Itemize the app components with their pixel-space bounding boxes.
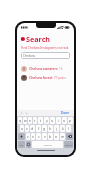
staticText: n [55,134,58,139]
button[interactable]: i [56,117,61,124]
button[interactable]: v [42,133,47,140]
button[interactable]: search [32,141,63,148]
button[interactable]: d [30,125,35,132]
button[interactable]: x [31,133,35,140]
button[interactable]: Done [60,111,71,115]
staticText: l [68,126,69,131]
button[interactable]: 123 [18,141,25,148]
button[interactable]: p [68,117,73,124]
button[interactable]: h [48,125,53,132]
staticText: f [38,126,40,131]
staticText: Done [61,111,70,115]
button[interactable]: search [64,141,73,148]
staticText: x [32,134,34,139]
button[interactable]: j [54,125,59,132]
staticText: u [51,118,54,123]
staticText: v [44,134,46,139]
staticText: r [34,118,36,123]
staticText: Find Chelsea Instagrams to track [21,46,69,50]
staticText: search [44,143,52,146]
staticText: Search [26,34,51,44]
button[interactable]: r [33,117,37,124]
staticText: a [21,126,23,131]
staticText: b [49,134,52,139]
staticText: d [31,126,34,131]
button[interactable]: q [18,117,22,124]
button[interactable]: z [26,133,30,140]
button[interactable]: Emoji [26,141,31,148]
staticText: Chelsea [23,54,35,58]
button[interactable]: b [48,133,53,140]
button[interactable]: n [54,133,59,140]
button[interactable]: s [25,125,29,132]
button[interactable]: Previous field [20,112,23,115]
staticText: o [63,118,66,123]
button[interactable]: k [60,125,65,132]
staticText: p [69,118,72,123]
button[interactable]: l [66,125,71,132]
button[interactable]: a [20,125,24,132]
staticText: Chelsea sweaters [29,66,58,71]
button[interactable]: Backspace [66,133,73,140]
button[interactable]: Next field [25,112,28,115]
button[interactable]: c [36,133,41,140]
staticText: k [62,126,64,131]
staticText: z [27,134,29,139]
staticText: t [40,118,42,123]
button[interactable]: t [38,117,43,124]
button[interactable]: Chelsea sweaters [17,64,74,73]
button[interactable]: Shift [18,133,25,140]
staticText: y [46,118,48,123]
button[interactable]: o [62,117,67,124]
staticText: h [49,126,52,131]
staticText: m [61,134,65,139]
button[interactable]: f [36,125,41,132]
staticText: w [24,118,27,123]
button[interactable]: y [44,117,49,124]
button[interactable]: u [50,117,55,124]
staticText: j [56,126,57,131]
staticText: 123 [19,143,24,146]
button[interactable]: m [60,133,65,140]
button[interactable]: Chelsea forest [17,73,74,82]
staticText: e [29,118,31,123]
button[interactable]: w [23,117,27,124]
staticText: c [38,134,40,139]
staticText: Chelsea forest [29,75,53,80]
button[interactable]: g [42,125,47,132]
staticText: search [65,143,73,146]
button[interactable]: Chelsea [21,52,70,59]
staticText: 15 posts [59,67,70,71]
staticText: q [19,118,22,123]
staticText: g [43,126,46,131]
staticText: i [58,118,59,123]
staticText: s [26,126,28,131]
button[interactable]: e [28,117,32,124]
staticText: 77 posts [54,76,66,80]
